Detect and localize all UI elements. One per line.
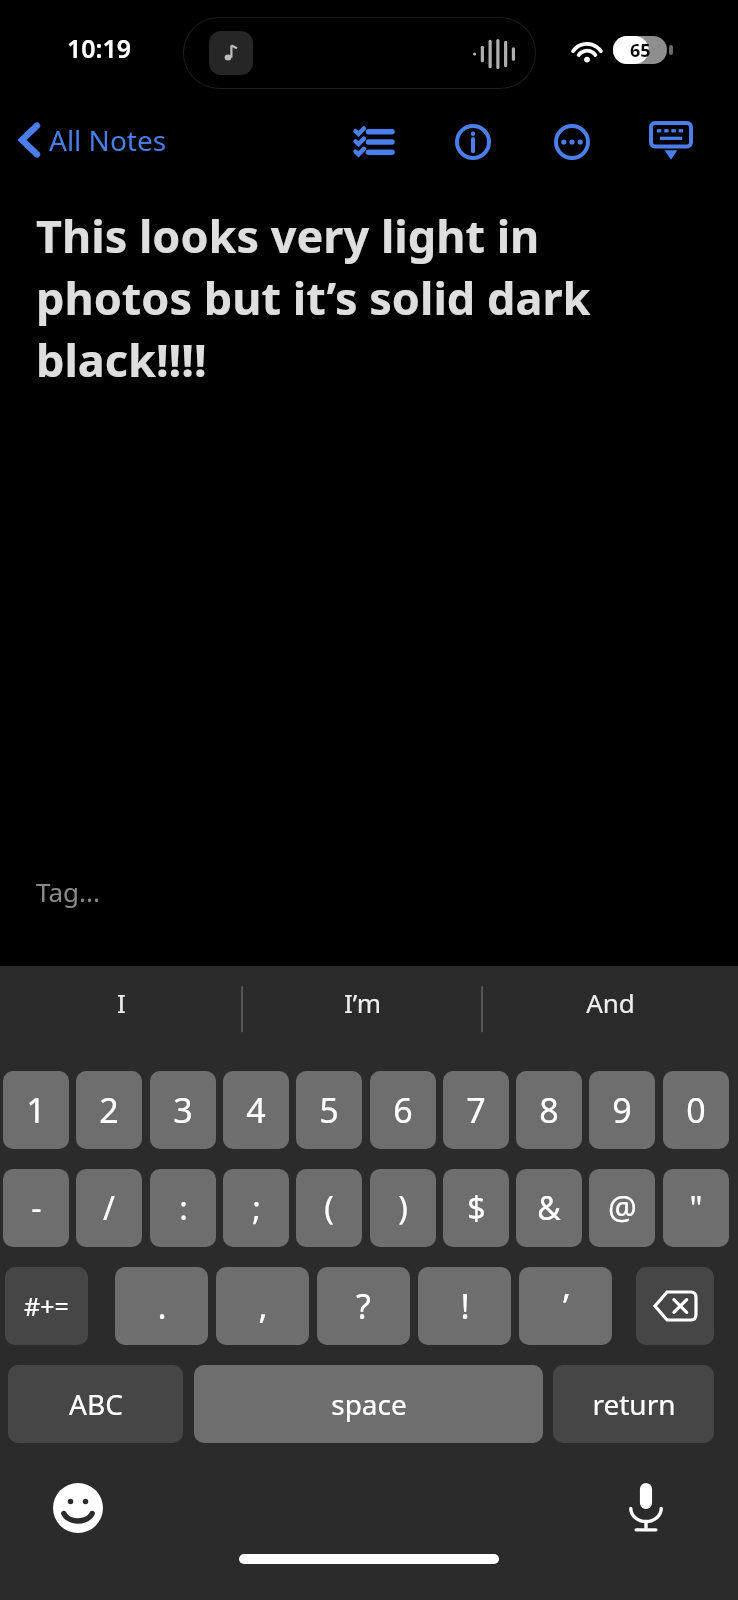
staticText: : xyxy=(179,1186,188,1230)
button[interactable]: #+= xyxy=(5,1267,88,1345)
button[interactable]: ABC xyxy=(8,1365,183,1443)
button[interactable]: 3 xyxy=(150,1071,216,1149)
staticText: ABC xyxy=(69,1385,123,1423)
staticText: & xyxy=(537,1186,561,1230)
button[interactable]: 5 xyxy=(296,1071,362,1149)
button[interactable]: I’m xyxy=(242,966,482,1038)
button[interactable]: & xyxy=(516,1169,582,1247)
button[interactable]: , xyxy=(216,1267,309,1345)
staticText: 0 xyxy=(686,1087,706,1133)
staticText: $ xyxy=(467,1186,486,1230)
button[interactable]: ; xyxy=(223,1169,289,1247)
button[interactable]: 8 xyxy=(516,1071,582,1149)
button[interactable]: . xyxy=(115,1267,208,1345)
button[interactable]: Hide keyboard xyxy=(641,112,701,172)
staticText: return xyxy=(592,1385,676,1423)
button[interactable]: I xyxy=(0,966,242,1038)
staticText: , xyxy=(258,1283,268,1329)
button[interactable]: All Notes xyxy=(12,112,175,168)
button[interactable]: ? xyxy=(317,1267,410,1345)
staticText: #+= xyxy=(24,1289,69,1323)
button[interactable]: - xyxy=(3,1169,69,1247)
button[interactable]: Delete xyxy=(636,1267,714,1345)
staticText: 10:19 xyxy=(67,31,132,65)
button[interactable]: 9 xyxy=(589,1071,655,1149)
button[interactable]: space xyxy=(194,1365,543,1443)
staticText: I xyxy=(117,985,126,1020)
staticText: This looks very light in photos but it’s… xyxy=(36,205,676,390)
staticText: And xyxy=(586,985,635,1020)
staticText: 1 xyxy=(26,1087,46,1133)
staticText: ) xyxy=(398,1186,408,1230)
button[interactable]: ( xyxy=(296,1169,362,1247)
staticText: 9 xyxy=(612,1087,632,1133)
staticText: / xyxy=(103,1186,115,1230)
button[interactable]: Checklist xyxy=(343,112,403,172)
button[interactable]: : xyxy=(150,1169,216,1247)
button[interactable]: @ xyxy=(589,1169,655,1247)
staticText: 6 xyxy=(393,1087,413,1133)
button[interactable]: 2 xyxy=(76,1071,142,1149)
staticText: 2 xyxy=(99,1087,119,1133)
button[interactable]: Tag... xyxy=(22,868,114,915)
button[interactable]: Emoji xyxy=(36,1466,120,1550)
button[interactable]: ’ xyxy=(519,1267,612,1345)
button[interactable]: ! xyxy=(418,1267,511,1345)
staticText: space xyxy=(331,1385,407,1423)
staticText: ? xyxy=(356,1283,371,1329)
staticText: ; xyxy=(252,1186,261,1230)
staticText: ( xyxy=(324,1186,334,1230)
button[interactable]: More options xyxy=(542,112,602,172)
staticText: I’m xyxy=(344,985,381,1020)
staticText: ’ xyxy=(563,1283,569,1329)
button[interactable]: / xyxy=(76,1169,142,1247)
staticText: 4 xyxy=(246,1087,266,1133)
button[interactable]: 0 xyxy=(663,1071,729,1149)
staticText: ! xyxy=(460,1283,470,1329)
staticText: 5 xyxy=(319,1087,339,1133)
button[interactable]: 4 xyxy=(223,1071,289,1149)
button[interactable]: $ xyxy=(443,1169,509,1247)
button[interactable]: And xyxy=(482,966,738,1038)
staticText: All Notes xyxy=(49,121,167,159)
staticText: " xyxy=(689,1186,703,1230)
staticText: Tag... xyxy=(36,874,100,909)
button[interactable]: 7 xyxy=(443,1071,509,1149)
button[interactable]: ) xyxy=(370,1169,436,1247)
button[interactable]: 1 xyxy=(3,1071,69,1149)
button[interactable]: return xyxy=(553,1365,714,1443)
button[interactable]: Dictation xyxy=(604,1466,688,1550)
button[interactable]: " xyxy=(663,1169,729,1247)
button[interactable]: 6 xyxy=(370,1071,436,1149)
staticText: 8 xyxy=(539,1087,559,1133)
staticText: @ xyxy=(608,1186,637,1230)
staticText: 65 xyxy=(630,38,651,63)
staticText: 3 xyxy=(173,1087,193,1133)
staticText: - xyxy=(31,1186,42,1230)
staticText: 7 xyxy=(466,1087,486,1133)
button[interactable]: Info xyxy=(443,112,503,172)
staticText: . xyxy=(157,1283,167,1329)
